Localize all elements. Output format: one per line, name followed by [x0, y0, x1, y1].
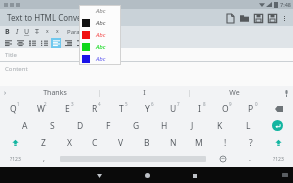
button[interactable]: Home: [141, 169, 154, 182]
button[interactable]: Keyboard: [280, 170, 290, 180]
button[interactable]: Emoji: [209, 151, 236, 167]
staticText: Abc: [96, 7, 106, 15]
button[interactable]: [75, 38, 85, 48]
button[interactable]: Space: [57, 151, 209, 167]
staticText: N: [170, 137, 177, 149]
button[interactable]: ?: [238, 134, 264, 151]
staticText: Abc: [96, 55, 106, 63]
button[interactable]: I: [100, 86, 189, 100]
button[interactable]: M: [186, 134, 212, 151]
button[interactable]: Backspace: [264, 100, 293, 117]
button[interactable]: New document: [223, 11, 237, 25]
button[interactable]: Recents: [188, 169, 201, 182]
button[interactable]: ?123: [263, 151, 293, 167]
staticText: Abc: [96, 43, 106, 51]
staticText: ?123: [10, 156, 21, 163]
staticText: Thanks: [43, 88, 67, 98]
button[interactable]: G: [122, 117, 150, 134]
staticText: I: [143, 88, 146, 98]
button[interactable]: 5: [108, 100, 134, 117]
staticText: B: [144, 137, 150, 149]
button[interactable]: [63, 38, 73, 48]
button[interactable]: U: [22, 26, 32, 37]
button[interactable]: Abc: [79, 17, 121, 29]
button[interactable]: F: [94, 117, 122, 134]
button[interactable]: x: [52, 26, 62, 37]
button[interactable]: Z: [30, 134, 56, 151]
button[interactable]: 1: [0, 100, 27, 117]
button[interactable]: [27, 38, 37, 48]
staticText: 7: [177, 101, 180, 107]
staticText: We: [229, 88, 240, 98]
button[interactable]: A: [11, 117, 38, 134]
button[interactable]: 2: [27, 100, 54, 117]
staticText: Abc: [96, 19, 106, 27]
button[interactable]: [3, 38, 13, 48]
button[interactable]: K: [206, 117, 234, 134]
staticText: 3: [71, 101, 74, 107]
button[interactable]: N: [160, 134, 186, 151]
button[interactable]: B: [2, 26, 12, 37]
button[interactable]: 3: [54, 100, 81, 117]
button[interactable]: [39, 38, 49, 48]
button[interactable]: Abc: [79, 41, 121, 53]
button[interactable]: More options: [279, 13, 290, 24]
button[interactable]: ,: [30, 151, 57, 167]
staticText: 9: [229, 101, 232, 107]
button[interactable]: 4: [81, 100, 108, 117]
button[interactable]: C: [82, 134, 108, 151]
button[interactable]: Voice input: [279, 86, 293, 100]
button[interactable]: .: [236, 151, 263, 167]
button[interactable]: X: [56, 134, 82, 151]
button[interactable]: 9: [212, 100, 238, 117]
button[interactable]: S: [38, 117, 66, 134]
button[interactable]: D: [66, 117, 94, 134]
button[interactable]: B: [134, 134, 160, 151]
button[interactable]: Open folder: [237, 11, 251, 25]
staticText: 1: [17, 101, 20, 107]
staticText: 4: [98, 101, 101, 107]
button[interactable]: Save: [251, 11, 265, 25]
button[interactable]: [15, 38, 25, 48]
staticText: Content: [5, 65, 28, 73]
staticText: O: [222, 103, 229, 115]
button[interactable]: 6: [134, 100, 160, 117]
staticText: x: [46, 28, 49, 35]
button[interactable]: I: [12, 26, 22, 37]
button[interactable]: V: [108, 134, 134, 151]
button[interactable]: H: [150, 117, 178, 134]
staticText: P: [248, 103, 254, 115]
button[interactable]: 0: [238, 100, 264, 117]
button[interactable]: Abc: [79, 29, 121, 41]
staticText: Y: [145, 103, 150, 115]
button[interactable]: [87, 38, 97, 48]
button[interactable]: Enter: [262, 117, 293, 134]
button[interactable]: We: [190, 86, 279, 100]
button[interactable]: ?123: [0, 151, 30, 167]
button[interactable]: Shift: [264, 134, 293, 151]
staticText: L: [246, 120, 251, 132]
button[interactable]: Paragraph: [65, 28, 105, 36]
button[interactable]: T: [32, 26, 42, 37]
staticText: 2: [44, 101, 47, 107]
button[interactable]: !: [212, 134, 238, 151]
staticText: H: [161, 120, 168, 132]
button[interactable]: Abc: [79, 5, 121, 17]
button[interactable]: Save as: [265, 11, 279, 25]
button[interactable]: 7: [160, 100, 186, 117]
button[interactable]: Shift: [0, 134, 30, 151]
button[interactable]: Thanks: [10, 86, 99, 100]
button[interactable]: J: [178, 117, 206, 134]
staticText: .: [249, 154, 251, 164]
button[interactable]: Abc: [79, 53, 121, 65]
button[interactable]: Back: [93, 169, 106, 182]
button[interactable]: L: [234, 117, 262, 134]
staticText: M: [195, 137, 203, 149]
staticText: ›: [4, 88, 7, 98]
staticText: 8: [203, 101, 206, 107]
button[interactable]: Expand: [0, 86, 10, 100]
button[interactable]: 8: [186, 100, 212, 117]
button[interactable]: x: [42, 26, 52, 37]
button[interactable]: [99, 38, 109, 48]
button[interactable]: [51, 38, 61, 48]
